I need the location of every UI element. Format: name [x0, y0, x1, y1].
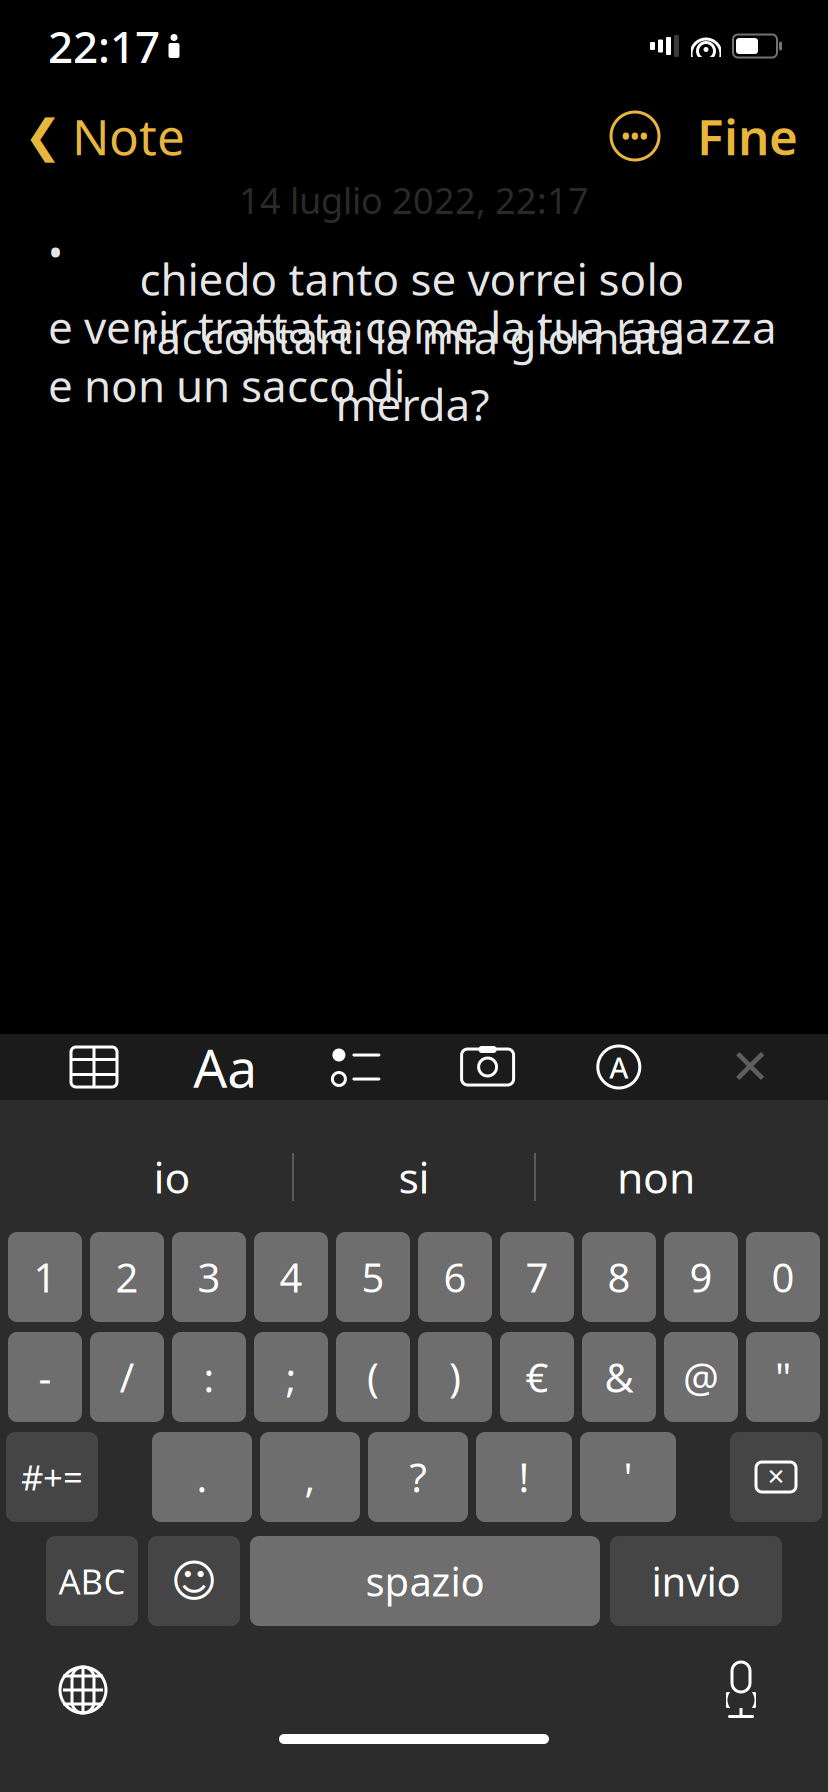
button[interactable]: Checklist — [320, 1035, 392, 1099]
staticText: • — [48, 225, 63, 278]
button[interactable]: ) — [418, 1332, 492, 1422]
staticText: € — [525, 1350, 548, 1403]
button[interactable]: ! — [476, 1432, 572, 1522]
staticText: ? — [409, 1450, 426, 1503]
staticText: - — [38, 1350, 51, 1403]
staticText: 5 — [361, 1250, 384, 1303]
staticText: #+= — [21, 1454, 83, 1500]
button[interactable]: : — [172, 1332, 246, 1422]
staticText: ; — [285, 1350, 296, 1403]
staticText: . — [196, 1450, 207, 1503]
button[interactable]: 9 — [664, 1232, 738, 1322]
staticText: 3 — [197, 1250, 220, 1303]
button[interactable]: 1 — [8, 1232, 82, 1322]
button[interactable]: / — [90, 1332, 164, 1422]
button[interactable]: Insert table — [58, 1035, 130, 1099]
button[interactable]: ' — [580, 1432, 676, 1522]
staticText: @ — [683, 1350, 719, 1403]
staticText: ! — [518, 1450, 529, 1503]
staticText: " — [775, 1350, 791, 1403]
staticText: invio — [651, 1554, 740, 1607]
staticText: : — [203, 1350, 214, 1403]
staticText: 22:17 — [48, 17, 160, 75]
staticText: ☺ — [170, 1555, 217, 1607]
button[interactable]: ; — [254, 1332, 328, 1422]
button[interactable]: Next keyboard — [38, 1646, 128, 1734]
button[interactable]: non — [536, 1139, 776, 1215]
button[interactable]: 5 — [336, 1232, 410, 1322]
staticText: & — [604, 1350, 633, 1403]
staticText: 6 — [443, 1250, 466, 1303]
button[interactable]: " — [746, 1332, 820, 1422]
button[interactable]: € — [500, 1332, 574, 1422]
button[interactable]: Dictation — [696, 1646, 786, 1734]
staticText: 9 — [689, 1250, 712, 1303]
button[interactable]: & — [582, 1332, 656, 1422]
button[interactable]: 2 — [90, 1232, 164, 1322]
staticText: ✕ — [766, 1464, 785, 1490]
staticText: Fine — [697, 103, 798, 169]
button[interactable]: 0 — [746, 1232, 820, 1322]
button[interactable]: 8 — [582, 1232, 656, 1322]
staticText: 2 — [115, 1250, 138, 1303]
staticText: Note — [72, 103, 185, 169]
button[interactable]: ABC — [46, 1536, 138, 1626]
staticText: 7 — [525, 1250, 548, 1303]
button[interactable]: Camera — [452, 1035, 524, 1099]
staticText: 14 luglio 2022, 22:17 — [239, 176, 589, 224]
button[interactable]: 4 — [254, 1232, 328, 1322]
button[interactable]: si — [294, 1139, 534, 1215]
button[interactable]: 7 — [500, 1232, 574, 1322]
button[interactable]: #+= — [6, 1432, 98, 1522]
staticText: si — [398, 1149, 429, 1205]
staticText: ( — [367, 1350, 379, 1403]
button[interactable]: Close keyboard — [714, 1035, 786, 1099]
button[interactable]: ( — [336, 1332, 410, 1422]
staticText: 0 — [771, 1250, 794, 1303]
button[interactable]: - — [8, 1332, 82, 1422]
staticText: ABC — [58, 1558, 125, 1604]
button[interactable]: Markup — [583, 1035, 655, 1099]
staticText: / — [119, 1350, 134, 1403]
staticText: chiedo tanto se vorrei solo raccontarti … — [139, 250, 685, 366]
staticText: ❮ — [24, 110, 62, 162]
staticText: 8 — [607, 1250, 630, 1303]
staticText: merda? — [335, 375, 489, 433]
staticText: , — [304, 1450, 315, 1503]
button[interactable]: invio — [610, 1536, 782, 1626]
staticText: 4 — [279, 1250, 302, 1303]
button[interactable]: spazio — [250, 1536, 600, 1626]
staticText: spazio — [365, 1554, 484, 1607]
staticText: ' — [623, 1450, 632, 1503]
button[interactable]: ❮ — [2, 92, 207, 180]
staticText: Aa — [193, 1032, 257, 1102]
staticText: ✕ — [730, 1040, 770, 1094]
staticText: ) — [449, 1350, 461, 1403]
button[interactable]: 6 — [418, 1232, 492, 1322]
staticText: A — [609, 1047, 628, 1086]
staticText: io — [153, 1149, 190, 1205]
button[interactable]: @ — [664, 1332, 738, 1422]
staticText: ••• — [621, 121, 648, 151]
button[interactable]: , — [260, 1432, 360, 1522]
button[interactable]: 3 — [172, 1232, 246, 1322]
button[interactable]: More options — [599, 96, 671, 176]
button[interactable]: . — [152, 1432, 252, 1522]
button[interactable]: Fine — [671, 92, 824, 180]
staticText: e venir trattata come la tua ragazza e n… — [48, 298, 777, 414]
button[interactable]: Text formatting — [189, 1035, 261, 1099]
button[interactable]: io — [52, 1139, 292, 1215]
button[interactable]: Delete — [730, 1432, 822, 1522]
staticText: non — [617, 1149, 695, 1205]
staticText: 1 — [33, 1250, 56, 1303]
button[interactable]: ? — [368, 1432, 468, 1522]
button[interactable]: Emoji — [148, 1536, 240, 1626]
